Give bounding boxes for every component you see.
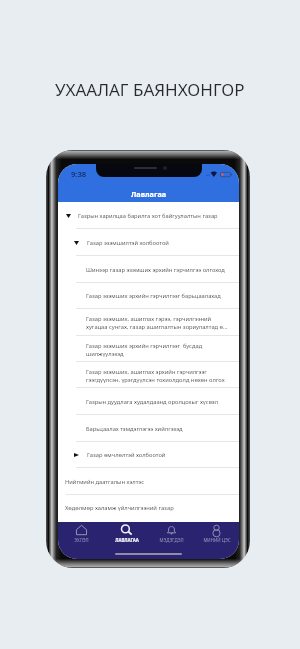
staticText: Газрын дуудлага худалдаанд оролцохыг хүс… xyxy=(86,398,219,406)
other: My menu xyxy=(212,525,221,535)
button[interactable]: Газрын харилцаа барилга хот байгуулалтын… xyxy=(58,202,239,229)
button[interactable]: Газар эзэмших эрхийн гэрчилгээг барьцаал… xyxy=(58,282,239,309)
button[interactable]: Notifications xyxy=(149,522,194,543)
button[interactable]: My menu xyxy=(194,522,239,543)
staticText: Газар эзэмших эрхийн гэрчилгээг бусдад ш… xyxy=(86,342,233,357)
staticText: МЭДЭГДЭЛ xyxy=(159,537,184,543)
staticText: Газрын харилцаа барилга хот байгуулалтын… xyxy=(78,212,218,220)
staticText: Газар эзэмшилтэй холбоотой xyxy=(87,239,169,247)
staticText: Газар эзэмших, ашиглах эрхийн гэрчилгээг… xyxy=(86,368,233,383)
button[interactable]: Шинээр газар эзэмших эрхийн гэрчилгээ ол… xyxy=(58,256,239,283)
staticText: Барьцаалах тэмдэглэгээ хийлгэхэд xyxy=(86,425,183,433)
staticText: Газар эзэмших эрхийн гэрчилгээг барьцаал… xyxy=(86,292,221,300)
other: Home xyxy=(76,525,87,535)
staticText: Газар өмчлөлтэй холбоотой xyxy=(87,451,166,459)
button[interactable]: Газар эзэмших, ашиглах гэрээ, гэрчилгээн… xyxy=(58,309,239,336)
button[interactable]: Reference xyxy=(104,522,149,543)
other: Notifications xyxy=(167,525,176,535)
button[interactable]: Home xyxy=(58,522,104,543)
staticText: МИНИЙ ЦЭС xyxy=(203,537,231,543)
button[interactable]: Нийгмийн даатгалын хэлтэс xyxy=(58,468,239,495)
button[interactable]: Хөдөлмөр халамж үйлчилгээний газар xyxy=(58,494,239,523)
button[interactable]: Газар эзэмшилтэй холбоотой xyxy=(58,229,239,256)
staticText: УХААЛАГ БАЯНХОНГОР xyxy=(55,78,245,101)
button[interactable]: Газар өмчлөлтэй холбоотой xyxy=(58,441,239,468)
staticText: 9:38 xyxy=(71,169,87,179)
other: Reference xyxy=(121,525,132,535)
staticText: Хөдөлмөр халамж үйлчилгээний газар xyxy=(65,504,174,512)
button[interactable]: Газрын дуудлага худалдаанд оролцохыг хүс… xyxy=(58,388,239,415)
staticText: ЭХЛЭЛ xyxy=(74,537,89,543)
staticText: Шинээр газар эзэмших эрхийн гэрчилгээ ол… xyxy=(86,266,225,274)
button[interactable]: Барьцаалах тэмдэглэгээ хийлгэхэд xyxy=(58,415,239,442)
staticText: Газар эзэмших, ашиглах гэрээ, гэрчилгээн… xyxy=(86,315,233,330)
button[interactable]: Газар эзэмших эрхийн гэрчилгээг бусдад ш… xyxy=(58,336,239,362)
staticText: ЛАВЛАГАА xyxy=(115,537,139,543)
button[interactable]: Газар эзэмших, ашиглах эрхийн гэрчилгээг… xyxy=(58,362,239,388)
staticText: Нийгмийн даатгалын хэлтэс xyxy=(65,478,144,486)
staticText: Лавлагаа xyxy=(131,189,167,199)
